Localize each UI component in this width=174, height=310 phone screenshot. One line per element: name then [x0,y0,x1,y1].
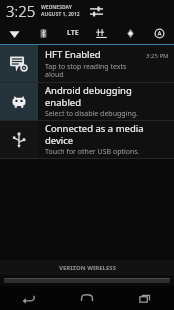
staticText: VERIZON WIRELESS [59,264,116,272]
staticText: Select to disable debugging. [45,109,138,119]
staticText: Touch for other USB options. [45,147,140,157]
button[interactable]: Auto rotate [145,22,174,44]
staticText: AUGUST 1, 2012 [41,11,80,18]
staticText: 3:25 PM [146,52,169,60]
button[interactable]: Back [0,286,58,310]
button[interactable]: LTE [58,22,87,44]
button[interactable]: Close notification shade [0,275,174,286]
staticText: WEDNESDAY [41,4,72,11]
staticText: Connected as a media device [45,122,170,146]
button[interactable]: Recents [116,286,174,310]
button[interactable]: Location [116,22,145,44]
staticText: Android debugging enabled [45,84,170,108]
staticText: HFT Enabled [45,48,101,61]
button[interactable]: Home [58,286,116,310]
button[interactable]: Android debugging enabled [0,83,174,120]
button[interactable]: Brightness [87,22,116,44]
button[interactable]: Wi-Fi [0,22,29,44]
staticText: LTE [67,28,79,38]
staticText: Tap to stop reading texts aloud [45,62,142,79]
button[interactable]: Bluetooth [29,22,58,44]
button[interactable]: Settings [88,3,104,19]
button[interactable]: Connected as a media device [0,121,174,158]
button[interactable]: HFT Enabled [0,45,174,82]
staticText: 3:25 [6,1,36,21]
